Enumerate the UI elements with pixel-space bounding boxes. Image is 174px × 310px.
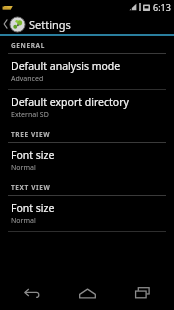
button[interactable]: Default analysis mode: [0, 54, 174, 89]
button[interactable]: Up, Settings: [0, 14, 174, 34]
staticText: Normal: [11, 216, 36, 226]
staticText: Default export directory: [11, 95, 129, 109]
button[interactable]: Default export directory: [0, 90, 174, 125]
staticText: Normal: [11, 163, 36, 173]
staticText: Default analysis mode: [11, 59, 121, 73]
staticText: Font size: [11, 148, 55, 162]
button[interactable]: Back: [9, 276, 55, 310]
button[interactable]: Recent apps: [119, 276, 165, 310]
button[interactable]: Font size: [0, 196, 174, 231]
staticText: External SD: [11, 110, 49, 120]
button[interactable]: Home: [64, 276, 110, 310]
staticText: TEXT VIEW: [11, 183, 51, 192]
staticText: Font size: [11, 201, 55, 215]
button[interactable]: Font size: [0, 143, 174, 178]
staticText: Settings: [29, 17, 71, 32]
staticText: TREE VIEW: [11, 130, 51, 139]
staticText: GENERAL: [11, 41, 45, 50]
staticText: 6:13: [153, 1, 171, 13]
staticText: Advanced: [11, 74, 44, 84]
